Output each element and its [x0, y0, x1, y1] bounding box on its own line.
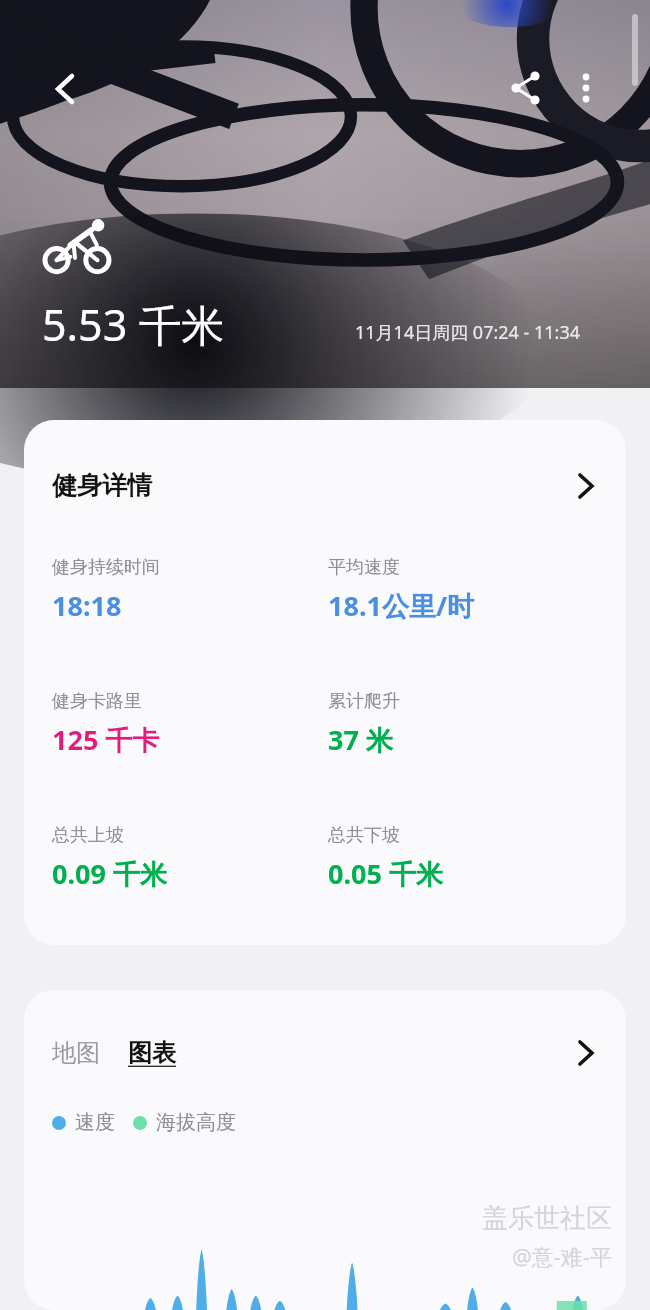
staticText: 0.05 千米 [328, 855, 443, 892]
staticText: 37 米 [328, 721, 393, 758]
staticText: 速度 [75, 1110, 115, 1135]
button[interactable]: More options [560, 62, 612, 114]
staticText: 总共下坡 [328, 824, 400, 847]
button[interactable]: 地图 [52, 1038, 100, 1068]
button[interactable]: Open chart [574, 1040, 600, 1066]
staticText: 平均速度 [328, 556, 400, 579]
staticText: 18.1公里/时 [328, 587, 475, 624]
button[interactable]: 健身详情 [24, 420, 626, 945]
staticText: 图表 [128, 1038, 176, 1068]
staticText: 健身持续时间 [52, 556, 160, 579]
staticText: 总共上坡 [52, 824, 124, 847]
staticText: 地图 [52, 1038, 100, 1068]
button[interactable]: 图表 [128, 1038, 176, 1068]
staticText: 累计爬升 [328, 690, 400, 713]
staticText: 11月14日周四 07:24 - 11:34 [355, 320, 581, 345]
staticText: 健身卡路里 [52, 690, 142, 713]
staticText: 5.53 千米 [42, 295, 225, 354]
staticText: @意-难-平 [512, 1241, 612, 1271]
staticText: 18:18 [52, 587, 122, 624]
button[interactable]: Back [38, 62, 92, 116]
button[interactable]: Share [500, 62, 552, 114]
staticText: 0.09 千米 [52, 855, 167, 892]
staticText: 盖乐世社区 [482, 1202, 612, 1235]
staticText: 海拔高度 [156, 1110, 236, 1135]
staticText: 健身详情 [52, 470, 152, 501]
staticText: 125 千卡 [52, 721, 160, 758]
